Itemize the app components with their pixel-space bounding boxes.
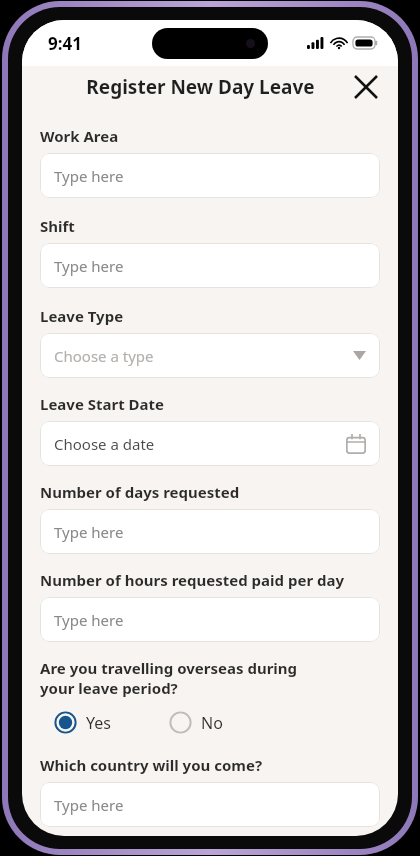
button[interactable]: Choose a type: [40, 333, 380, 378]
button[interactable]: Type here: [40, 509, 380, 554]
staticText: Are you travelling overseas during your …: [40, 658, 298, 698]
staticText: Yes: [86, 712, 111, 734]
staticText: Number of days requested: [40, 482, 240, 502]
other: Pick a date: [346, 434, 366, 454]
button[interactable]: Close: [346, 67, 386, 107]
staticText: 9:41: [48, 32, 82, 55]
staticText: Register New Day Leave: [86, 74, 315, 100]
staticText: Type here: [54, 522, 366, 542]
staticText: Leave Start Date: [40, 394, 165, 414]
staticText: Shift: [40, 216, 75, 236]
staticText: Type here: [54, 256, 366, 276]
button[interactable]: Type here: [40, 782, 380, 827]
staticText: Type here: [54, 610, 366, 630]
staticText: Which country will you come?: [40, 755, 263, 775]
button[interactable]: Type here: [40, 153, 380, 198]
staticText: No: [201, 712, 223, 734]
staticText: Choose a date: [54, 434, 346, 454]
staticText: Leave Type: [40, 306, 124, 326]
button[interactable]: Choose a date: [40, 421, 380, 466]
staticText: Type here: [54, 166, 366, 186]
button[interactable]: Type here: [40, 597, 380, 642]
staticText: Type here: [54, 795, 366, 815]
button[interactable]: Yes: [52, 708, 113, 737]
staticText: Work Area: [40, 126, 119, 146]
other: Open leave type list: [353, 351, 366, 360]
button[interactable]: No: [167, 708, 225, 737]
button[interactable]: Type here: [40, 243, 380, 288]
staticText: Number of hours requested paid per day: [40, 570, 345, 590]
staticText: Choose a type: [54, 346, 353, 366]
